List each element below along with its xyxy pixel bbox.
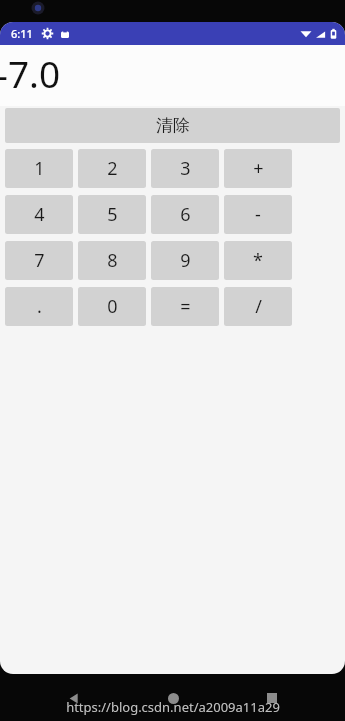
button[interactable]: 9 xyxy=(151,241,219,280)
staticText: https://blog.csdn.net/a2009a11a29 xyxy=(66,698,280,716)
staticText: 9 xyxy=(180,248,191,273)
button[interactable]: * xyxy=(224,241,292,280)
staticText: 1 xyxy=(34,156,45,181)
button[interactable]: = xyxy=(151,287,219,326)
staticText: -7.0 xyxy=(0,48,61,98)
button[interactable]: 8 xyxy=(78,241,146,280)
staticText: 7 xyxy=(34,248,45,273)
staticText: 0 xyxy=(107,294,118,319)
button[interactable]: 4 xyxy=(5,195,73,234)
staticText: - xyxy=(255,202,261,227)
button[interactable]: 3 xyxy=(151,149,219,188)
staticText: 6:11 xyxy=(11,26,33,41)
button[interactable]: 2 xyxy=(78,149,146,188)
staticText: + xyxy=(253,156,264,181)
staticText: 4 xyxy=(34,202,45,227)
staticText: * xyxy=(253,248,263,273)
staticText: 5 xyxy=(107,202,118,227)
staticText: 3 xyxy=(180,156,191,181)
staticText: = xyxy=(180,294,191,319)
button[interactable]: + xyxy=(224,149,292,188)
button[interactable]: / xyxy=(224,287,292,326)
button[interactable]: Recent apps xyxy=(259,685,285,711)
staticText: 6 xyxy=(180,202,191,227)
button[interactable]: 1 xyxy=(5,149,73,188)
staticText: 8 xyxy=(107,248,118,273)
button[interactable]: 6 xyxy=(151,195,219,234)
button[interactable]: Home xyxy=(160,685,186,711)
button[interactable]: 5 xyxy=(78,195,146,234)
button[interactable]: Back xyxy=(60,685,86,711)
button[interactable]: 0 xyxy=(78,287,146,326)
button[interactable]: - xyxy=(224,195,292,234)
staticText: 清除 xyxy=(156,115,190,136)
button[interactable]: 7 xyxy=(5,241,73,280)
staticText: . xyxy=(37,294,42,319)
staticText: 2 xyxy=(107,156,118,181)
button[interactable]: . xyxy=(5,287,73,326)
staticText: / xyxy=(255,294,262,319)
button[interactable]: 清除 xyxy=(5,108,340,143)
